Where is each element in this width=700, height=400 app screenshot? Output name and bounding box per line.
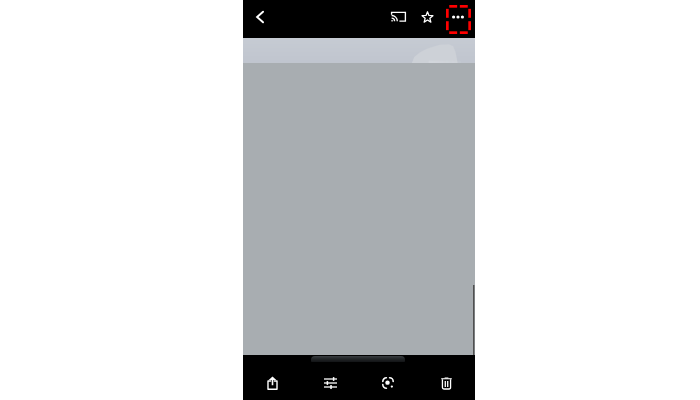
button[interactable]: Edit xyxy=(314,367,346,399)
button[interactable]: Back xyxy=(244,1,276,33)
button[interactable]: Cast xyxy=(382,0,414,32)
button[interactable]: Favorite xyxy=(411,1,443,33)
button[interactable]: Lens xyxy=(372,367,404,399)
button[interactable]: More options xyxy=(442,1,474,33)
button[interactable]: Delete xyxy=(430,367,462,399)
button[interactable]: Share xyxy=(256,367,288,399)
